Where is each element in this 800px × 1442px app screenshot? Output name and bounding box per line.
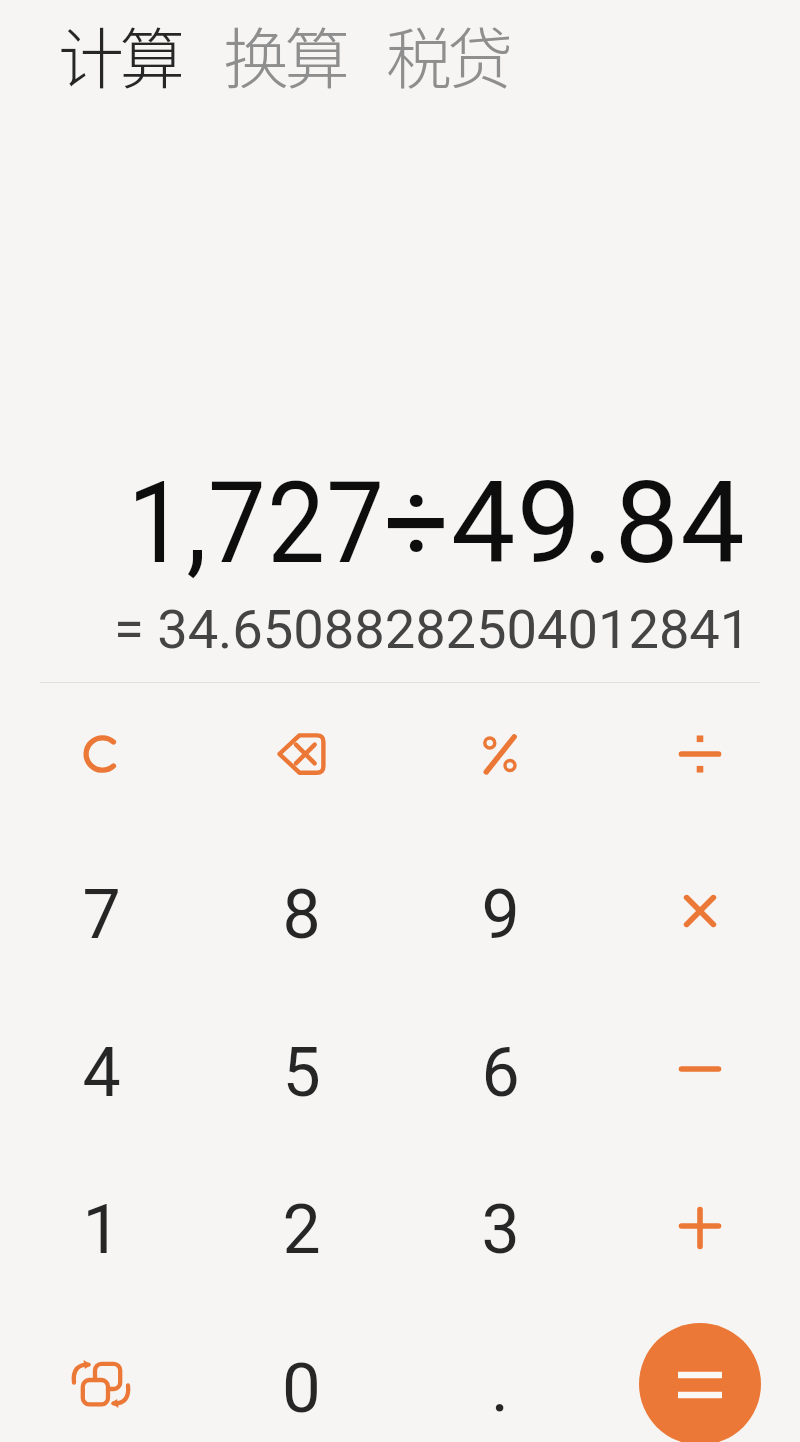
staticText: 换算 [223,6,346,90]
button[interactable]: Percent [405,679,595,829]
staticText: 税贷 [386,6,509,90]
button[interactable]: 5 [206,994,396,1144]
button[interactable]: 换算 [223,0,346,100]
staticText: . [491,1348,509,1428]
button[interactable]: . [405,1309,595,1442]
staticText: 0 [282,1348,321,1429]
button[interactable]: 7 [6,836,196,986]
staticText: = 34.65088282504012841 [114,598,751,662]
button[interactable]: 9 [405,836,595,986]
staticText: 9 [481,875,520,955]
button[interactable]: Plus [605,1151,795,1301]
button[interactable]: Divide [605,679,795,829]
button[interactable]: Equals [639,1323,761,1442]
button[interactable]: 6 [405,994,595,1144]
staticText: 6 [481,1033,520,1113]
button[interactable]: Convert units [6,1309,196,1442]
staticText: 4 [82,1033,121,1113]
button[interactable]: 2 [206,1151,396,1301]
button[interactable]: Minus [605,994,795,1144]
button[interactable]: 计算 [58,0,181,100]
staticText: ÷49.84 [384,457,747,590]
staticText: 1,727 [127,457,386,590]
button[interactable]: 8 [206,836,396,986]
staticText: 2 [282,1190,321,1270]
button[interactable]: 0 [206,1309,396,1442]
button[interactable]: Backspace [206,679,396,829]
staticText: 3 [481,1190,520,1270]
button[interactable]: 税贷 [386,0,509,100]
button[interactable]: Multiply [605,836,795,986]
button[interactable]: Clear [6,679,196,829]
staticText: 7 [82,875,121,955]
staticText: 1 [82,1190,121,1270]
staticText: 8 [282,875,321,955]
staticText: 计算 [58,6,181,90]
button[interactable]: 4 [6,994,196,1144]
button[interactable]: 3 [405,1151,595,1301]
button[interactable]: 1 [6,1151,196,1301]
staticText: 5 [282,1033,321,1113]
